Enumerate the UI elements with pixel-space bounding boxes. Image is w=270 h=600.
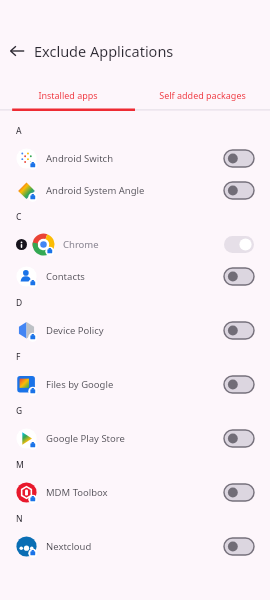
staticText: Nextcloud bbox=[46, 540, 92, 553]
staticText: N bbox=[16, 513, 23, 525]
button[interactable]: Files by Google bbox=[0, 368, 270, 400]
staticText: Contacts bbox=[46, 270, 85, 283]
staticText: D bbox=[16, 297, 23, 309]
button[interactable]: Back bbox=[0, 34, 34, 68]
button[interactable]: Google Play Store bbox=[0, 422, 270, 454]
staticText: C bbox=[16, 211, 22, 223]
staticText: Device Policy bbox=[46, 324, 104, 337]
button[interactable]: Toggle exclusion bbox=[224, 182, 254, 199]
button[interactable]: Chrome bbox=[0, 228, 270, 260]
button[interactable]: Installed apps bbox=[0, 82, 135, 108]
button[interactable]: Toggle exclusion bbox=[224, 376, 254, 393]
button[interactable]: Android Switch bbox=[0, 142, 270, 174]
staticText: Google Play Store bbox=[46, 432, 125, 445]
button[interactable]: Toggle exclusion bbox=[224, 268, 254, 285]
button[interactable]: Device Policy bbox=[0, 314, 270, 346]
button[interactable]: Self added packages bbox=[135, 82, 270, 108]
button[interactable]: Nextcloud bbox=[0, 530, 270, 562]
staticText: A bbox=[16, 125, 22, 137]
button[interactable]: Toggle exclusion bbox=[224, 322, 254, 339]
staticText: Self added packages bbox=[159, 89, 246, 101]
button[interactable]: Toggle exclusion bbox=[224, 484, 254, 501]
staticText: Chrome bbox=[63, 238, 99, 251]
button[interactable]: Toggle exclusion bbox=[224, 236, 254, 253]
button[interactable]: Contacts bbox=[0, 260, 270, 292]
staticText: MDM Toolbox bbox=[46, 486, 108, 499]
staticText: Android System Angle bbox=[46, 184, 145, 197]
staticText: Exclude Applications bbox=[34, 41, 174, 61]
staticText: Android Switch bbox=[46, 152, 114, 165]
button[interactable]: Toggle exclusion bbox=[224, 538, 254, 555]
staticText: F bbox=[16, 351, 21, 363]
staticText: Installed apps bbox=[38, 89, 98, 101]
button[interactable]: MDM Toolbox bbox=[0, 476, 270, 508]
button[interactable]: Toggle exclusion bbox=[224, 150, 254, 167]
staticText: M bbox=[16, 459, 24, 471]
button[interactable]: Toggle exclusion bbox=[224, 430, 254, 447]
button[interactable]: Android System Angle bbox=[0, 174, 270, 206]
staticText: G bbox=[16, 405, 23, 417]
staticText: Files by Google bbox=[46, 378, 114, 391]
